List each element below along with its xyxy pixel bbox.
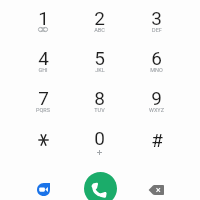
staticText: PQRS (36, 107, 50, 113)
staticText: # (151, 129, 163, 151)
button[interactable]: # (128, 128, 185, 168)
button[interactable]: 0 (71, 128, 128, 168)
staticText: 4 (38, 47, 49, 69)
staticText: MNO (150, 67, 163, 73)
staticText: JKL (95, 67, 105, 73)
button[interactable]: 5 (71, 48, 128, 88)
button[interactable]: 7 (15, 88, 71, 128)
button[interactable]: 2 (71, 8, 128, 48)
staticText: 3 (151, 7, 162, 29)
staticText: 5 (94, 47, 105, 69)
staticText: 1 (38, 7, 49, 29)
staticText: 6 (151, 47, 162, 69)
button[interactable]: Call (84, 172, 117, 200)
staticText: 9 (151, 87, 162, 109)
staticText: TUV (94, 107, 105, 113)
button[interactable] (15, 128, 71, 168)
staticText: DEF (152, 27, 162, 33)
staticText: 7 (38, 87, 49, 109)
button[interactable]: 4 (15, 48, 71, 88)
button[interactable]: 9 (128, 88, 185, 128)
staticText: 0 (94, 127, 105, 149)
button[interactable]: Backspace (144, 176, 170, 200)
button[interactable]: Video call (30, 176, 56, 200)
button[interactable]: 1 (15, 8, 71, 48)
button[interactable]: 8 (71, 88, 128, 128)
staticText: 8 (94, 87, 105, 109)
staticText: 2 (94, 7, 105, 29)
staticText: ABC (94, 27, 105, 33)
button[interactable]: 3 (128, 8, 185, 48)
staticText: GHI (38, 67, 48, 73)
button[interactable]: 6 (128, 48, 185, 88)
staticText: WXYZ (149, 107, 164, 113)
